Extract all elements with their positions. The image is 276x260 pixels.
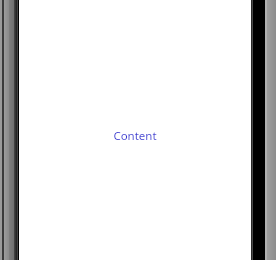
staticText: Content [113,128,157,144]
button[interactable]: Content [19,0,251,260]
